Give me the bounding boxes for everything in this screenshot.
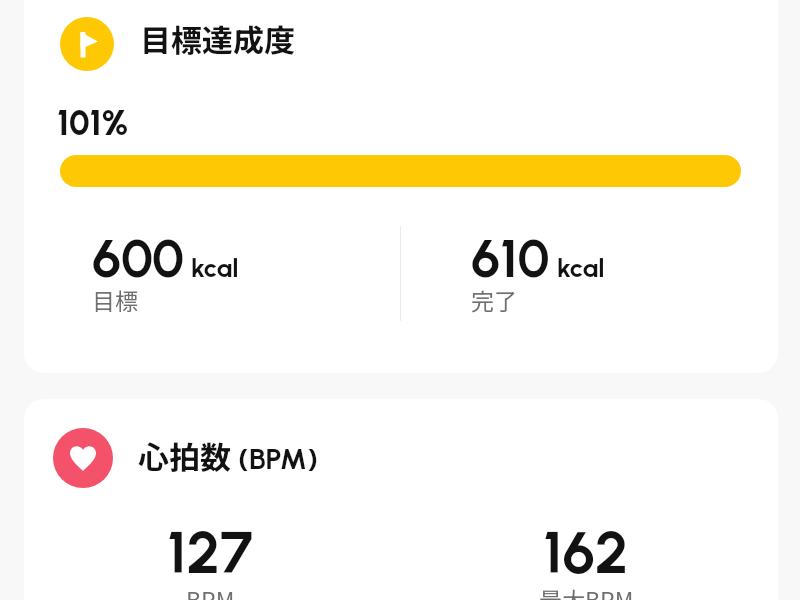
staticText: kcal (557, 252, 605, 283)
staticText: 最大BPM (539, 582, 634, 600)
staticText: 心拍数 (138, 433, 231, 478)
staticText: kcal (191, 252, 239, 283)
other: Heart rate (70, 445, 96, 471)
button[interactable]: Heart rate (24, 399, 778, 600)
button[interactable]: Goal (24, 0, 778, 373)
staticText: 127 (167, 517, 253, 588)
staticText: (BPM) (238, 441, 318, 476)
staticText: 162 (543, 517, 629, 588)
staticText: 目標 (92, 283, 138, 316)
staticText: 600 (92, 227, 184, 291)
staticText: 101% (57, 103, 129, 144)
staticText: 目標達成度 (140, 16, 295, 61)
staticText: 完了 (471, 283, 517, 316)
other: Goal (73, 30, 101, 58)
staticText: BPM (186, 582, 235, 600)
staticText: 610 (471, 227, 550, 291)
